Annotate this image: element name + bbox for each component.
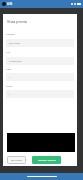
button[interactable]: Juan Pérez: [6, 39, 74, 47]
staticText: Registrar alumno: [38, 159, 56, 162]
staticText: NUI:: [6, 51, 11, 54]
staticText: 1234567890: [9, 60, 22, 63]
staticText: Vista previa: [7, 19, 27, 24]
staticText: Juan Pérez: [9, 42, 20, 45]
button[interactable]: Retroceder: [7, 156, 26, 164]
staticText: Retroceder: [11, 159, 23, 162]
button[interactable]: Registrar alumno: [32, 156, 61, 164]
staticText: 4:36: [7, 2, 13, 6]
staticText: Nivel:: [6, 68, 12, 71]
button[interactable]: 1234567890: [6, 57, 74, 65]
staticText: 1: [9, 76, 11, 79]
staticText: A: [9, 93, 11, 96]
staticText: Nombre:: [6, 33, 16, 36]
staticText: Curso:: [6, 85, 13, 88]
